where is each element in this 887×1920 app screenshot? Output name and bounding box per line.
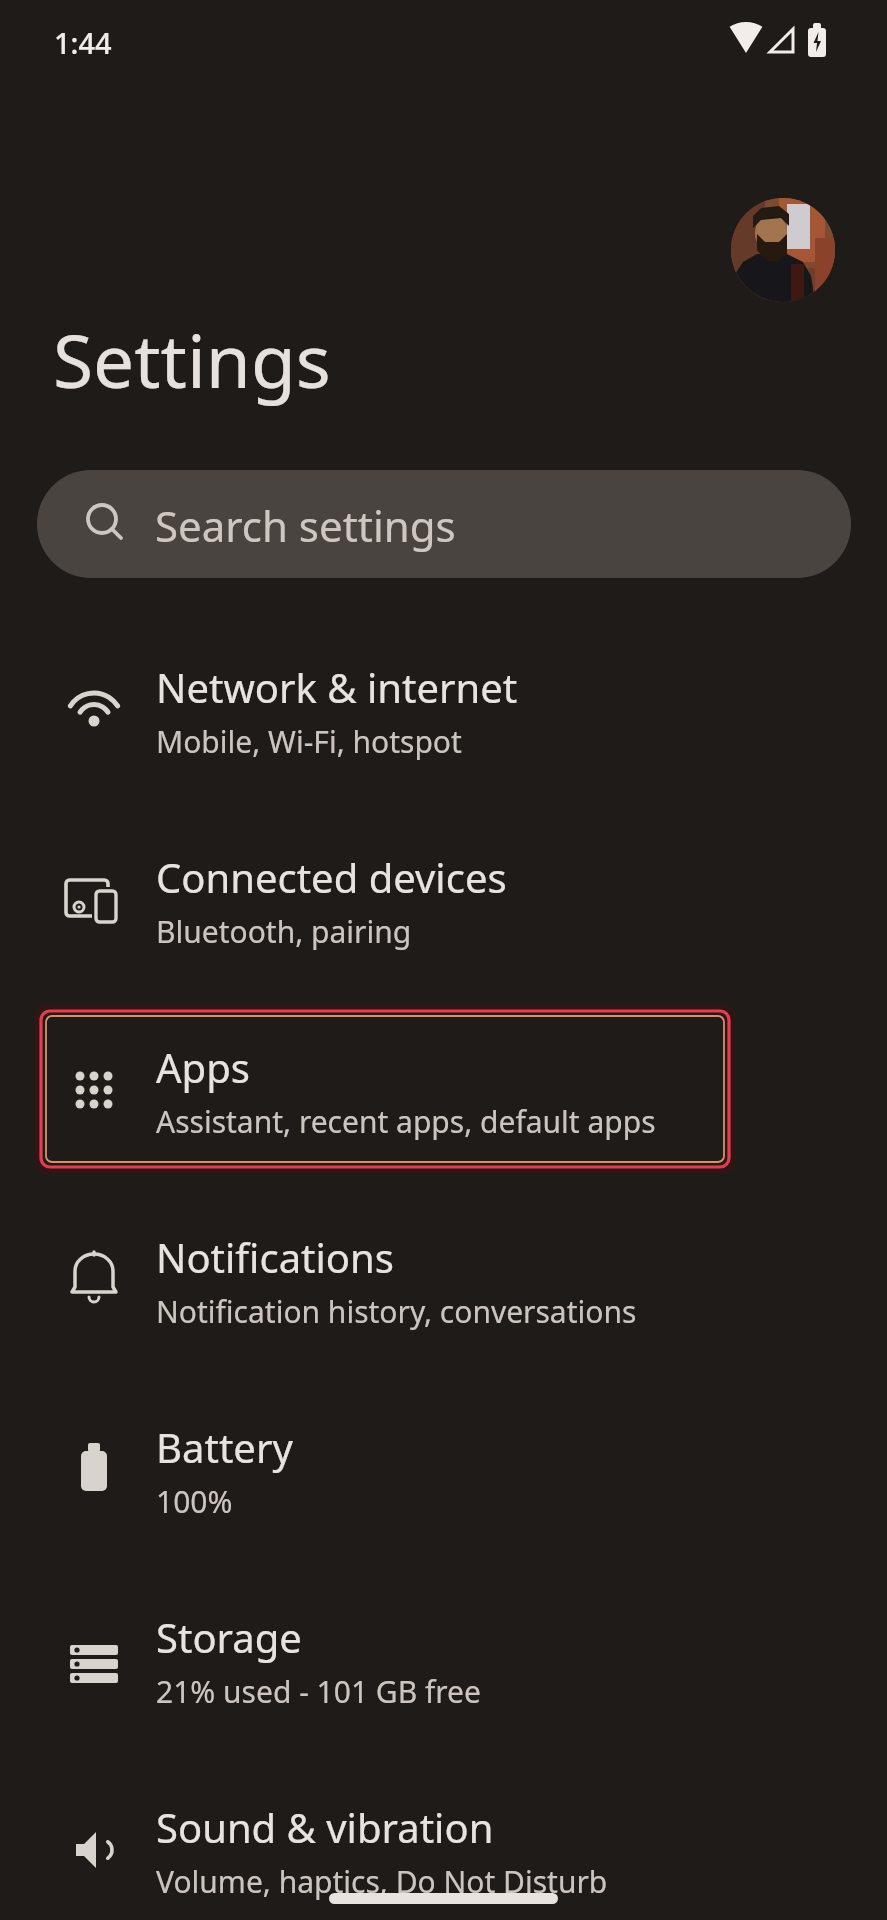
staticText: Battery (156, 1420, 293, 1474)
staticText: Search settings (155, 497, 456, 554)
staticText: Mobile, Wi-Fi, hotspot (156, 721, 462, 762)
staticText: 1:44 (54, 23, 112, 62)
staticText: Storage (156, 1610, 302, 1664)
staticText: Settings (53, 310, 331, 409)
staticText: Apps (156, 1040, 250, 1094)
staticText: 21% used - 101 GB free (156, 1671, 481, 1712)
staticText: Network & internet (156, 660, 518, 714)
staticText: 100% (156, 1481, 233, 1522)
staticText: Notification history, conversations (156, 1291, 637, 1332)
staticText: Volume, haptics, Do Not Disturb (156, 1861, 608, 1902)
staticText: Assistant, recent apps, default apps (156, 1101, 656, 1142)
staticText: Notifications (156, 1230, 394, 1284)
staticText: Bluetooth, pairing (156, 911, 412, 952)
staticText: Sound & vibration (156, 1800, 494, 1854)
staticText: Connected devices (156, 850, 507, 904)
